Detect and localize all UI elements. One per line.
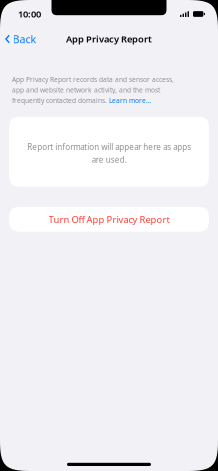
- staticText: 10:00: [18, 8, 41, 20]
- button[interactable]: Turn Off App Privacy Report: [0, 207, 218, 232]
- staticText: Back: [12, 32, 36, 46]
- button[interactable]: Learn more about App Privacy Report: [109, 95, 151, 102]
- staticText: App Privacy Report: [66, 33, 152, 45]
- staticText: Report information will appear here as a…: [27, 142, 191, 165]
- staticText: Turn Off App Privacy Report: [48, 213, 169, 225]
- staticText: App Privacy Report records data and sens…: [12, 75, 174, 105]
- button[interactable]: Back: [0, 27, 42, 51]
